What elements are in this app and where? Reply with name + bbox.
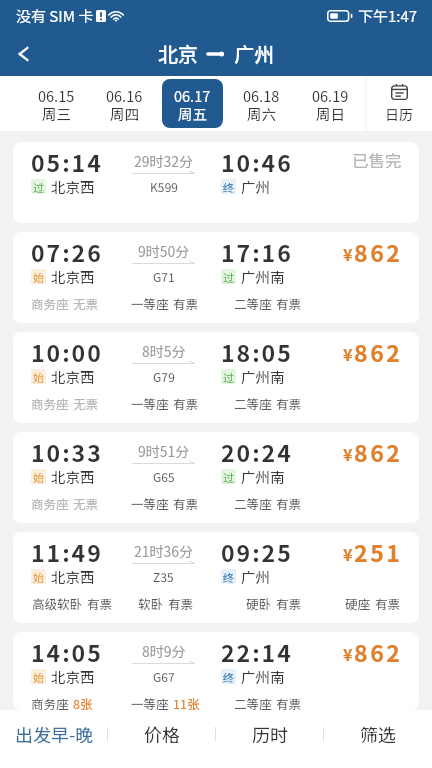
- staticText: 18:05: [221, 335, 293, 368]
- staticText: 有票: [173, 394, 199, 412]
- staticText: 22:14: [221, 635, 293, 668]
- staticText: 无票: [73, 394, 99, 412]
- staticText: 广州南: [241, 666, 285, 687]
- staticText: 06.17: [174, 85, 211, 106]
- staticText: 广州南: [241, 266, 285, 287]
- button[interactable]: Calendar: [365, 76, 432, 131]
- staticText: 9时51分: [138, 441, 190, 461]
- staticText: 周三: [42, 103, 71, 124]
- staticText: Z35: [153, 568, 174, 585]
- staticText: 北京西: [51, 566, 95, 587]
- button[interactable]: 11:49: [13, 532, 419, 623]
- staticText: 有票: [276, 694, 302, 710]
- button[interactable]: 05:14: [13, 142, 419, 223]
- staticText: 有票: [173, 494, 199, 512]
- staticText: 无票: [73, 294, 99, 312]
- staticText: 广州: [241, 176, 270, 197]
- staticText: 北京: [158, 39, 198, 68]
- staticText: 有票: [375, 594, 401, 612]
- staticText: 始: [33, 669, 44, 684]
- staticText: 北京西: [51, 266, 95, 287]
- staticText: 有票: [276, 494, 302, 512]
- staticText: ¥: [343, 442, 353, 465]
- staticText: 商务座: [31, 694, 69, 710]
- button[interactable]: 10:33: [13, 432, 419, 523]
- staticText: 无票: [73, 494, 99, 512]
- staticText: 过: [223, 469, 234, 484]
- button[interactable]: 出发早-晚: [0, 710, 108, 768]
- button[interactable]: 07:26: [13, 232, 419, 323]
- staticText: 9时50分: [138, 241, 190, 261]
- staticText: 一等座: [131, 494, 169, 512]
- button[interactable]: Back: [0, 32, 50, 76]
- staticText: K599: [150, 178, 178, 195]
- staticText: 862: [354, 335, 403, 368]
- staticText: 始: [33, 369, 44, 384]
- staticText: 有票: [168, 594, 194, 612]
- staticText: 二等座: [234, 294, 272, 312]
- staticText: 广州南: [241, 366, 285, 387]
- staticText: 862: [354, 435, 403, 468]
- staticText: 北京西: [51, 466, 95, 487]
- staticText: 周四: [110, 103, 139, 124]
- button[interactable]: 06.15: [26, 79, 86, 128]
- staticText: 29时32分: [134, 151, 194, 171]
- staticText: 广州: [234, 39, 274, 68]
- button[interactable]: 06.17: [162, 79, 223, 128]
- staticText: 20:24: [221, 435, 293, 468]
- staticText: 8时5分: [142, 341, 186, 361]
- button[interactable]: 10:00: [13, 332, 419, 423]
- staticText: 终: [223, 179, 234, 194]
- staticText: 10:46: [221, 145, 293, 178]
- staticText: 05:14: [31, 145, 103, 178]
- button[interactable]: 14:05: [13, 632, 419, 710]
- staticText: 始: [33, 269, 44, 284]
- staticText: 广州: [241, 566, 270, 587]
- staticText: 二等座: [234, 394, 272, 412]
- button[interactable]: 06.19: [300, 79, 361, 128]
- staticText: 筛选: [360, 721, 396, 747]
- staticText: 09:25: [221, 535, 293, 568]
- staticText: 11:49: [31, 535, 103, 568]
- staticText: 北京西: [51, 366, 95, 387]
- staticText: 硬卧: [246, 594, 272, 612]
- staticText: 21时36分: [134, 541, 194, 561]
- staticText: 商务座: [31, 294, 69, 312]
- button[interactable]: 筛选: [324, 710, 432, 768]
- staticText: G67: [153, 668, 175, 685]
- staticText: 日历: [385, 104, 413, 124]
- staticText: 历时: [252, 721, 288, 747]
- staticText: 始: [33, 469, 44, 484]
- staticText: 一等座: [131, 294, 169, 312]
- staticText: 出发早-晚: [15, 721, 94, 747]
- button[interactable]: 06.18: [231, 79, 292, 128]
- staticText: 07:26: [31, 235, 103, 268]
- button[interactable]: 06.16: [94, 79, 154, 128]
- staticText: 周六: [247, 103, 276, 124]
- staticText: 8张: [73, 694, 93, 710]
- staticText: 一等座: [131, 394, 169, 412]
- staticText: 周日: [316, 103, 345, 124]
- staticText: 过: [223, 269, 234, 284]
- staticText: 10:00: [31, 335, 103, 368]
- staticText: 有票: [87, 594, 113, 612]
- staticText: 过: [223, 369, 234, 384]
- staticText: 一等座: [131, 694, 169, 710]
- button[interactable]: 历时: [216, 710, 324, 768]
- staticText: 二等座: [234, 494, 272, 512]
- staticText: 8时9分: [142, 641, 186, 661]
- staticText: 北京西: [51, 176, 95, 197]
- staticText: 有票: [276, 594, 302, 612]
- staticText: 06.15: [38, 85, 75, 106]
- button[interactable]: 价格: [108, 710, 216, 768]
- staticText: 862: [354, 635, 403, 668]
- staticText: 终: [223, 669, 234, 684]
- staticText: 有票: [173, 294, 199, 312]
- staticText: 17:16: [221, 235, 293, 268]
- staticText: 始: [33, 569, 44, 584]
- staticText: G65: [153, 468, 175, 485]
- staticText: 二等座: [234, 694, 272, 710]
- staticText: G79: [153, 368, 175, 385]
- staticText: 过: [33, 179, 44, 194]
- staticText: 有票: [276, 394, 302, 412]
